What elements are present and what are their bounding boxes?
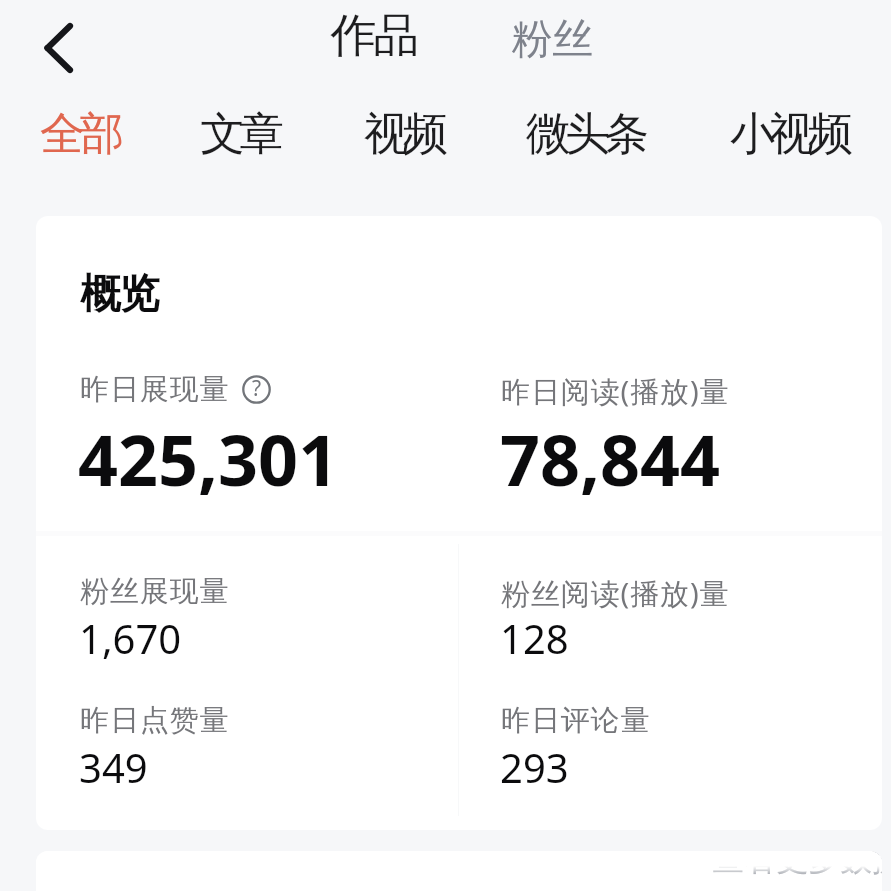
staticText: 概览 [81,268,159,318]
staticText: 昨日点赞量 [80,702,230,739]
staticText: 视频 [367,106,445,163]
button[interactable] [72,356,452,516]
staticText: 文章 [203,106,281,163]
staticText: 昨日阅读(播放)量 [501,371,730,411]
button[interactable]: 作品 [331,7,419,65]
button[interactable]: 文章 [203,106,281,163]
button[interactable]: 视频 [367,106,445,163]
staticText: 78,844 [500,411,721,506]
staticText: 微头条 [529,106,646,163]
button[interactable]: 查看更多数据 [712,851,882,879]
staticText: 昨日展现量 [80,371,230,408]
button[interactable]: Info about yesterday impressions [242,375,271,404]
staticText: 小视频 [733,106,850,163]
staticText: 粉丝 [512,14,593,66]
button[interactable] [493,356,873,516]
button[interactable]: 粉丝 [511,14,594,66]
staticText: 昨日评论量 [501,702,651,739]
staticText: 粉丝阅读(播放)量 [501,573,730,613]
button[interactable]: 昨日点赞量 [76,690,476,792]
staticText: 粉丝展现量 [80,573,230,610]
button[interactable]: 粉丝阅读(播放)量 [497,561,882,663]
staticText: 293 [500,740,569,794]
staticText: 349 [79,740,148,794]
button[interactable]: Back [18,6,102,90]
staticText: 查看更多数据 [712,851,882,879]
button[interactable]: 昨日评论量 [497,690,882,792]
staticText: ? [252,374,262,403]
button[interactable]: 小视频 [733,106,850,163]
staticText: 425,301 [78,411,339,506]
staticText: 1,670 [79,611,182,665]
button[interactable]: 微头条 [529,106,646,163]
staticText: 128 [500,611,569,665]
staticText: 全部 [43,106,121,163]
button[interactable]: 全部 [43,106,121,163]
staticText: 作品 [332,7,418,65]
button[interactable]: 粉丝展现量 [76,561,476,663]
